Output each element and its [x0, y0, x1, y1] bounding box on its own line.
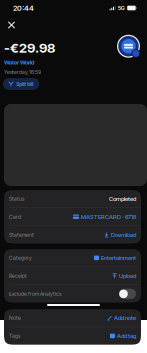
staticText: 5G: [118, 5, 125, 11]
staticText: Card: [9, 214, 21, 220]
staticText: Split bill: [16, 81, 33, 87]
button[interactable]: Note: [4, 309, 141, 327]
button[interactable]: Exclude from Analytics: [4, 285, 141, 303]
button[interactable]: Tags: [4, 327, 141, 345]
staticText: Statement: [9, 232, 34, 238]
button[interactable]: Statement: [4, 226, 141, 243]
staticText: -€29.98: [4, 40, 55, 56]
button[interactable]: Category: [4, 249, 141, 267]
button[interactable]: Split bill: [3, 78, 39, 90]
staticText: Note: [9, 315, 21, 321]
staticText: Exclude from Analytics: [9, 291, 61, 297]
staticText: Entertainment: [101, 254, 136, 261]
staticText: Download: [111, 231, 136, 238]
staticText: 20:44: [13, 3, 34, 12]
staticText: Add note: [114, 314, 136, 321]
button[interactable]: Status: [4, 190, 141, 207]
staticText: Water World: [4, 59, 34, 66]
staticText: MASTERCARD · 6718: [81, 213, 136, 220]
staticText: Status: [9, 196, 24, 202]
staticText: Receipt: [9, 273, 27, 279]
staticText: Tags: [9, 333, 20, 339]
button[interactable]: Receipt: [4, 267, 141, 285]
button[interactable]: Water World: [4, 59, 34, 66]
staticText: Completed: [109, 195, 136, 202]
staticText: Yesterday, 16:59: [4, 69, 41, 75]
button[interactable]: Close: [3, 16, 20, 33]
staticText: Upload: [119, 272, 136, 279]
staticText: Category: [9, 255, 32, 261]
button[interactable]: Card: [4, 208, 141, 225]
staticText: Add tag: [117, 332, 136, 339]
